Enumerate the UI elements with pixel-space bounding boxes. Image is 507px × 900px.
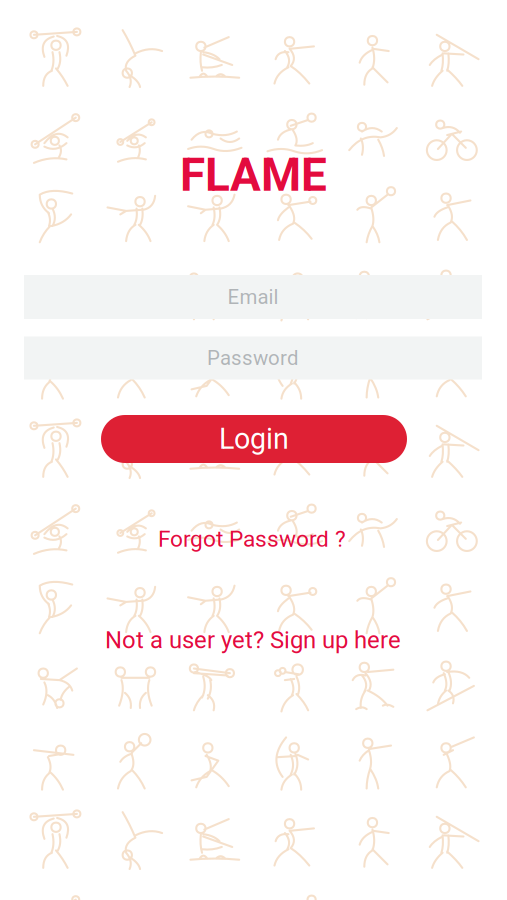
- button[interactable]: Not a user yet? Sign up here: [97, 620, 409, 660]
- staticText: Login: [219, 422, 289, 456]
- staticText: FLAME: [180, 148, 327, 202]
- staticText: Forgot Password ?: [158, 526, 346, 552]
- button[interactable]: Forgot Password ?: [150, 520, 354, 558]
- staticText: Not a user yet? Sign up here: [105, 626, 401, 654]
- staticText: Email: [227, 285, 278, 309]
- button[interactable]: Login: [101, 415, 407, 463]
- staticText: Password: [207, 346, 299, 370]
